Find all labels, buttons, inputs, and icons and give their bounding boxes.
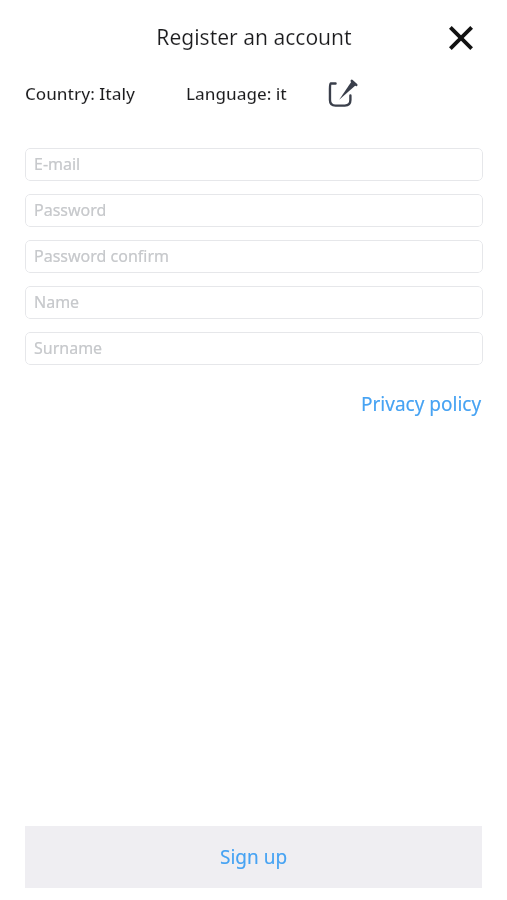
staticText: Surname [34,337,103,359]
button[interactable]: Password confirm [25,240,483,273]
button[interactable]: Edit country and language [325,76,359,110]
staticText: Password [34,199,107,221]
staticText: Language: it [186,82,287,105]
button[interactable]: Name [25,286,483,319]
staticText: Privacy policy [361,391,482,417]
button[interactable]: Sign up [25,826,482,888]
staticText: Password confirm [34,245,169,267]
staticText: Country: Italy [25,82,136,105]
button[interactable]: Close [439,16,483,60]
staticText: Sign up [220,844,288,870]
staticText: E-mail [34,153,81,175]
staticText: Register an account [156,23,352,52]
button[interactable]: E-mail [25,148,483,181]
button[interactable]: Privacy policy [361,387,482,421]
staticText: Name [34,291,80,313]
button[interactable]: Surname [25,332,483,365]
button[interactable]: Password [25,194,483,227]
